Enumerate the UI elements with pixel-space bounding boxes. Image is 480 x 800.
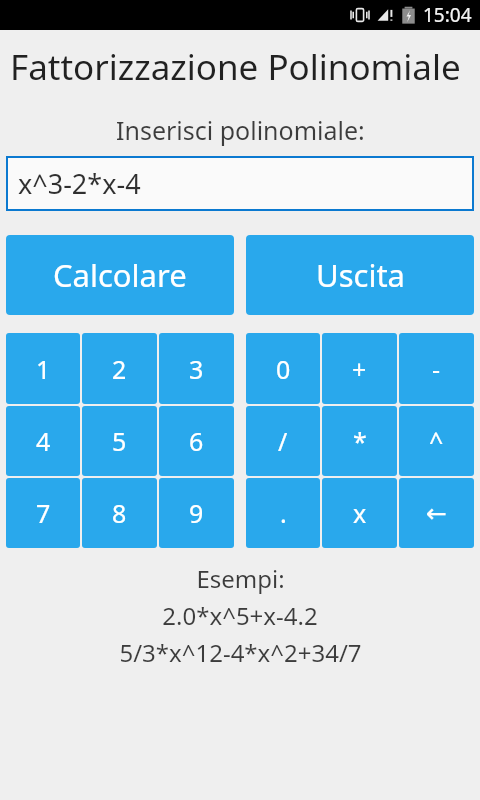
staticText: 4 — [36, 424, 51, 458]
button[interactable]: * — [322, 406, 397, 476]
button[interactable]: Calcolare — [6, 235, 234, 315]
staticText: 8 — [112, 496, 127, 530]
button[interactable]: . — [246, 478, 320, 548]
staticText: 3 — [189, 352, 204, 386]
button[interactable]: Uscita — [246, 235, 474, 315]
staticText: 6 — [189, 424, 204, 458]
button[interactable]: 8 — [82, 478, 157, 548]
staticText: Uscita — [316, 254, 405, 296]
button[interactable]: 0 — [246, 333, 320, 404]
staticText: 2 — [112, 352, 127, 386]
staticText: x — [353, 496, 367, 530]
staticText: 5/3*x^12-4*x^2+34/7 — [119, 636, 362, 669]
staticText: / — [278, 424, 288, 458]
button[interactable]: 7 — [6, 478, 80, 548]
staticText: + — [352, 352, 367, 386]
staticText: ← — [426, 499, 447, 528]
staticText: 0 — [276, 352, 291, 386]
button[interactable]: 6 — [159, 406, 234, 476]
staticText: * — [353, 424, 367, 458]
staticText: 1 — [36, 352, 51, 386]
button[interactable]: / — [246, 406, 320, 476]
button[interactable]: ← — [399, 478, 474, 548]
staticText: Fattorizzazione Polinomiale — [10, 43, 461, 91]
button[interactable]: 2 — [82, 333, 157, 404]
staticText: ^ — [429, 424, 444, 458]
button[interactable]: 9 — [159, 478, 234, 548]
button[interactable]: ^ — [399, 406, 474, 476]
button[interactable]: 4 — [6, 406, 80, 476]
staticText: . — [280, 496, 287, 530]
staticText: Inserisci polinomiale: — [116, 113, 365, 147]
staticText: Calcolare — [53, 254, 187, 296]
staticText: - — [432, 352, 441, 386]
button[interactable]: x — [322, 478, 397, 548]
staticText: 5 — [112, 424, 127, 458]
button[interactable]: x^3-2*x-4 — [6, 156, 474, 211]
button[interactable]: 3 — [159, 333, 234, 404]
staticText: Esempi: — [196, 562, 285, 595]
staticText: 2.0*x^5+x-4.2 — [162, 599, 318, 632]
button[interactable]: 1 — [6, 333, 80, 404]
button[interactable]: - — [399, 333, 474, 404]
staticText: 9 — [189, 496, 204, 530]
button[interactable]: + — [322, 333, 397, 404]
staticText: 7 — [36, 496, 51, 530]
button[interactable]: 5 — [82, 406, 157, 476]
staticText: 15:04 — [423, 2, 472, 28]
staticText: x^3-2*x-4 — [18, 165, 141, 202]
